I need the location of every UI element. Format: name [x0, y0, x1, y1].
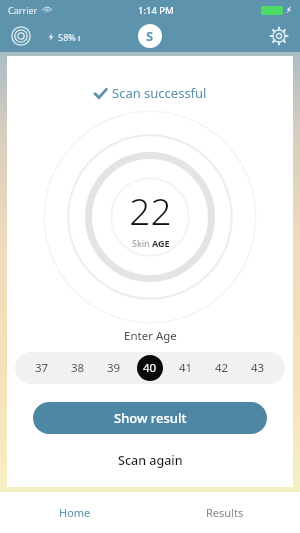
staticText: Results	[206, 505, 244, 520]
button[interactable]: 39	[101, 355, 127, 381]
staticText: Home	[59, 505, 91, 520]
staticText: Scan successful	[112, 84, 207, 102]
button[interactable]: 43	[245, 355, 271, 381]
button[interactable]: 41	[173, 355, 199, 381]
staticText: Carrier	[8, 4, 38, 16]
staticText: 40	[143, 360, 157, 376]
staticText: Show result	[114, 409, 187, 427]
staticText: Skin AGE	[132, 237, 170, 249]
button[interactable]: App logo	[138, 24, 162, 48]
staticText: 22	[129, 185, 172, 235]
button[interactable]: Results	[150, 492, 300, 533]
button[interactable]: 37	[29, 355, 55, 381]
staticText: 41	[179, 360, 193, 376]
button[interactable]: Scan target	[10, 25, 32, 47]
staticText: S	[146, 27, 154, 45]
staticText: 39	[107, 360, 121, 376]
staticText: 38	[71, 360, 85, 376]
button[interactable]: 58% ı	[40, 28, 88, 45]
button[interactable]: Scan again	[110, 449, 191, 472]
button[interactable]: Show result	[33, 402, 267, 434]
staticText: 42	[215, 360, 229, 376]
staticText: 43	[251, 360, 265, 376]
button[interactable]: 38	[65, 355, 91, 381]
button[interactable]: 40	[137, 355, 163, 381]
staticText: 58% ı	[58, 31, 81, 43]
button[interactable]: Home	[0, 492, 150, 533]
staticText: Enter Age	[124, 328, 177, 344]
staticText: 37	[35, 360, 49, 376]
staticText: Scan again	[118, 452, 183, 469]
button[interactable]: 42	[209, 355, 235, 381]
staticText: 1:14 PM	[138, 4, 174, 17]
staticText: ⚡	[286, 6, 292, 15]
button[interactable]: Settings	[268, 25, 290, 47]
